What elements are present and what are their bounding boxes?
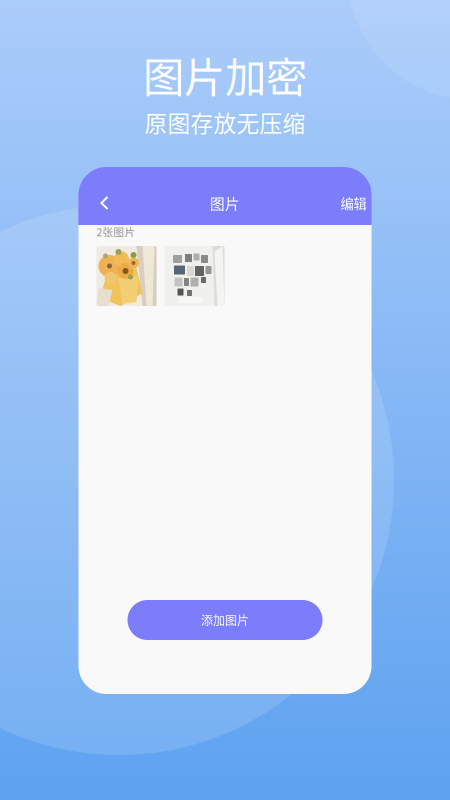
staticText: 图片加密 [143, 45, 307, 104]
staticText: 图片 [210, 192, 240, 214]
button[interactable]: 编辑 [336, 181, 370, 224]
staticText: 编辑 [340, 193, 366, 213]
button[interactable]: 添加图片 [127, 600, 322, 640]
button[interactable]: Photo 2 [164, 246, 224, 306]
staticText: 原图存放无压缩 [144, 106, 305, 138]
staticText: 2张图片 [96, 224, 135, 239]
button[interactable]: Photo 1 [96, 246, 156, 306]
staticText: 添加图片 [201, 611, 249, 629]
button[interactable]: Back [86, 181, 122, 224]
